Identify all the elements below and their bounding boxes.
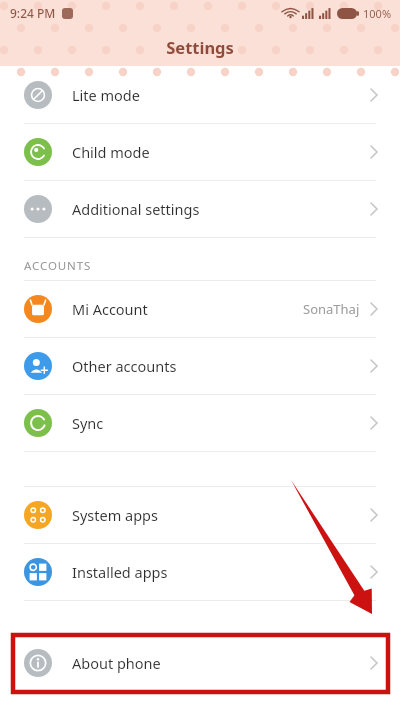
staticText: Settings bbox=[166, 36, 234, 58]
button[interactable]: Lite mode bbox=[0, 67, 400, 123]
staticText: Mi Account bbox=[72, 299, 148, 319]
staticText: 100% bbox=[363, 6, 392, 21]
staticText: Sync bbox=[72, 413, 104, 433]
staticText: 9:24 PM bbox=[10, 5, 56, 21]
staticText: Other accounts bbox=[72, 356, 177, 376]
button[interactable]: System apps bbox=[0, 487, 400, 543]
button[interactable]: Additional settings bbox=[0, 181, 400, 237]
button[interactable]: About phone bbox=[0, 635, 400, 691]
button[interactable]: Installed apps bbox=[0, 544, 400, 600]
staticText: System apps bbox=[72, 505, 158, 525]
button[interactable]: Mi Account bbox=[0, 281, 400, 337]
staticText: ACCOUNTS bbox=[24, 258, 92, 274]
button[interactable]: Child mode bbox=[0, 124, 400, 180]
staticText: Lite mode bbox=[72, 85, 140, 105]
staticText: SonaThaj bbox=[303, 300, 360, 318]
staticText: Child mode bbox=[72, 142, 150, 162]
staticText: Additional settings bbox=[72, 199, 200, 219]
button[interactable]: Other accounts bbox=[0, 338, 400, 394]
staticText: Installed apps bbox=[72, 562, 168, 582]
button[interactable]: Sync bbox=[0, 395, 400, 451]
staticText: About phone bbox=[72, 653, 161, 673]
